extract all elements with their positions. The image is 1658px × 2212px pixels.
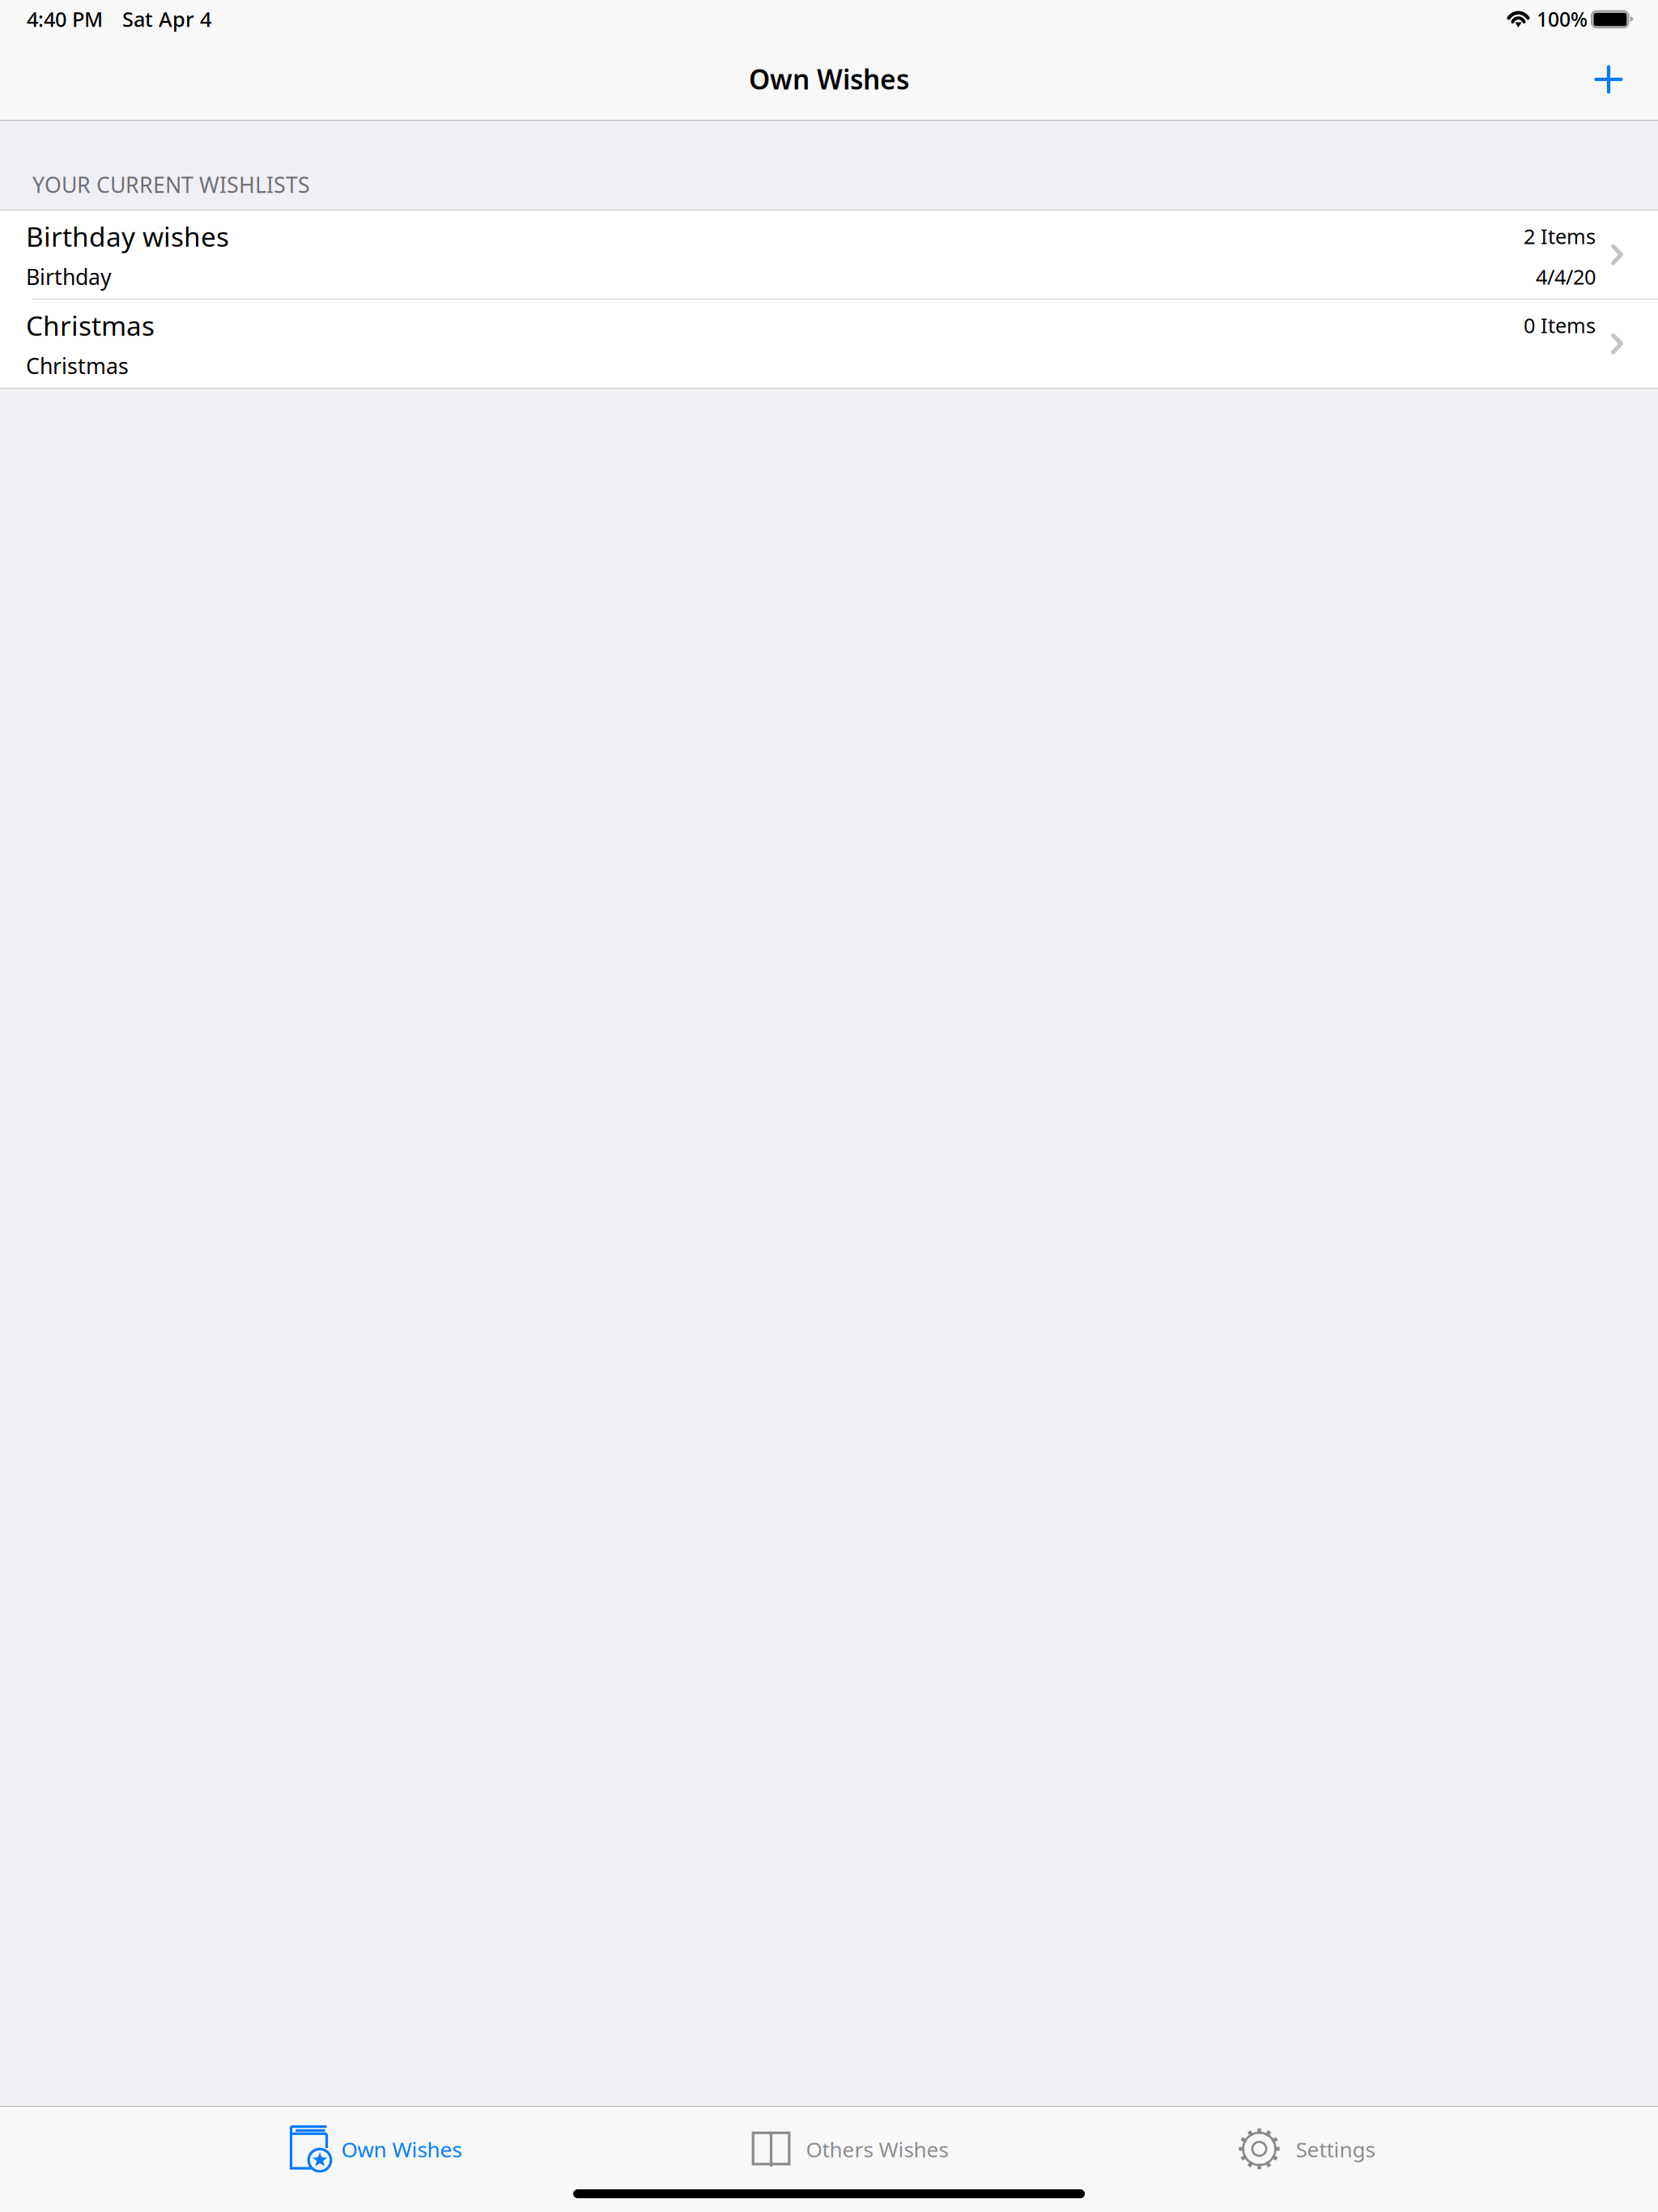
staticText: 4:40 PM [27,5,103,33]
staticText: Sat Apr 4 [122,5,211,33]
staticText: 0 Items [1524,312,1596,339]
staticText: Birthday [26,262,112,291]
staticText: 2 Items [1524,223,1596,250]
staticText: Settings [1296,2135,1375,2163]
button[interactable]: Birthday wishes [0,211,1658,299]
staticText: 100% [1537,6,1588,32]
staticText: Birthday wishes [26,218,229,254]
staticText: Own Wishes [749,61,909,97]
button[interactable]: Christmas [0,300,1658,388]
staticText: 4/4/20 [1536,263,1596,290]
button[interactable]: Settings [1238,2107,1375,2192]
staticText: Christmas [26,307,155,343]
staticText: YOUR CURRENT WISHLISTS [32,170,310,199]
button[interactable]: Own Wishes [286,2107,462,2192]
button[interactable]: Add wishlist [1562,36,1658,120]
staticText: Others Wishes [806,2135,948,2163]
button[interactable]: Others Wishes [752,2107,948,2192]
staticText: Own Wishes [341,2135,462,2163]
staticText: Christmas [26,351,129,380]
